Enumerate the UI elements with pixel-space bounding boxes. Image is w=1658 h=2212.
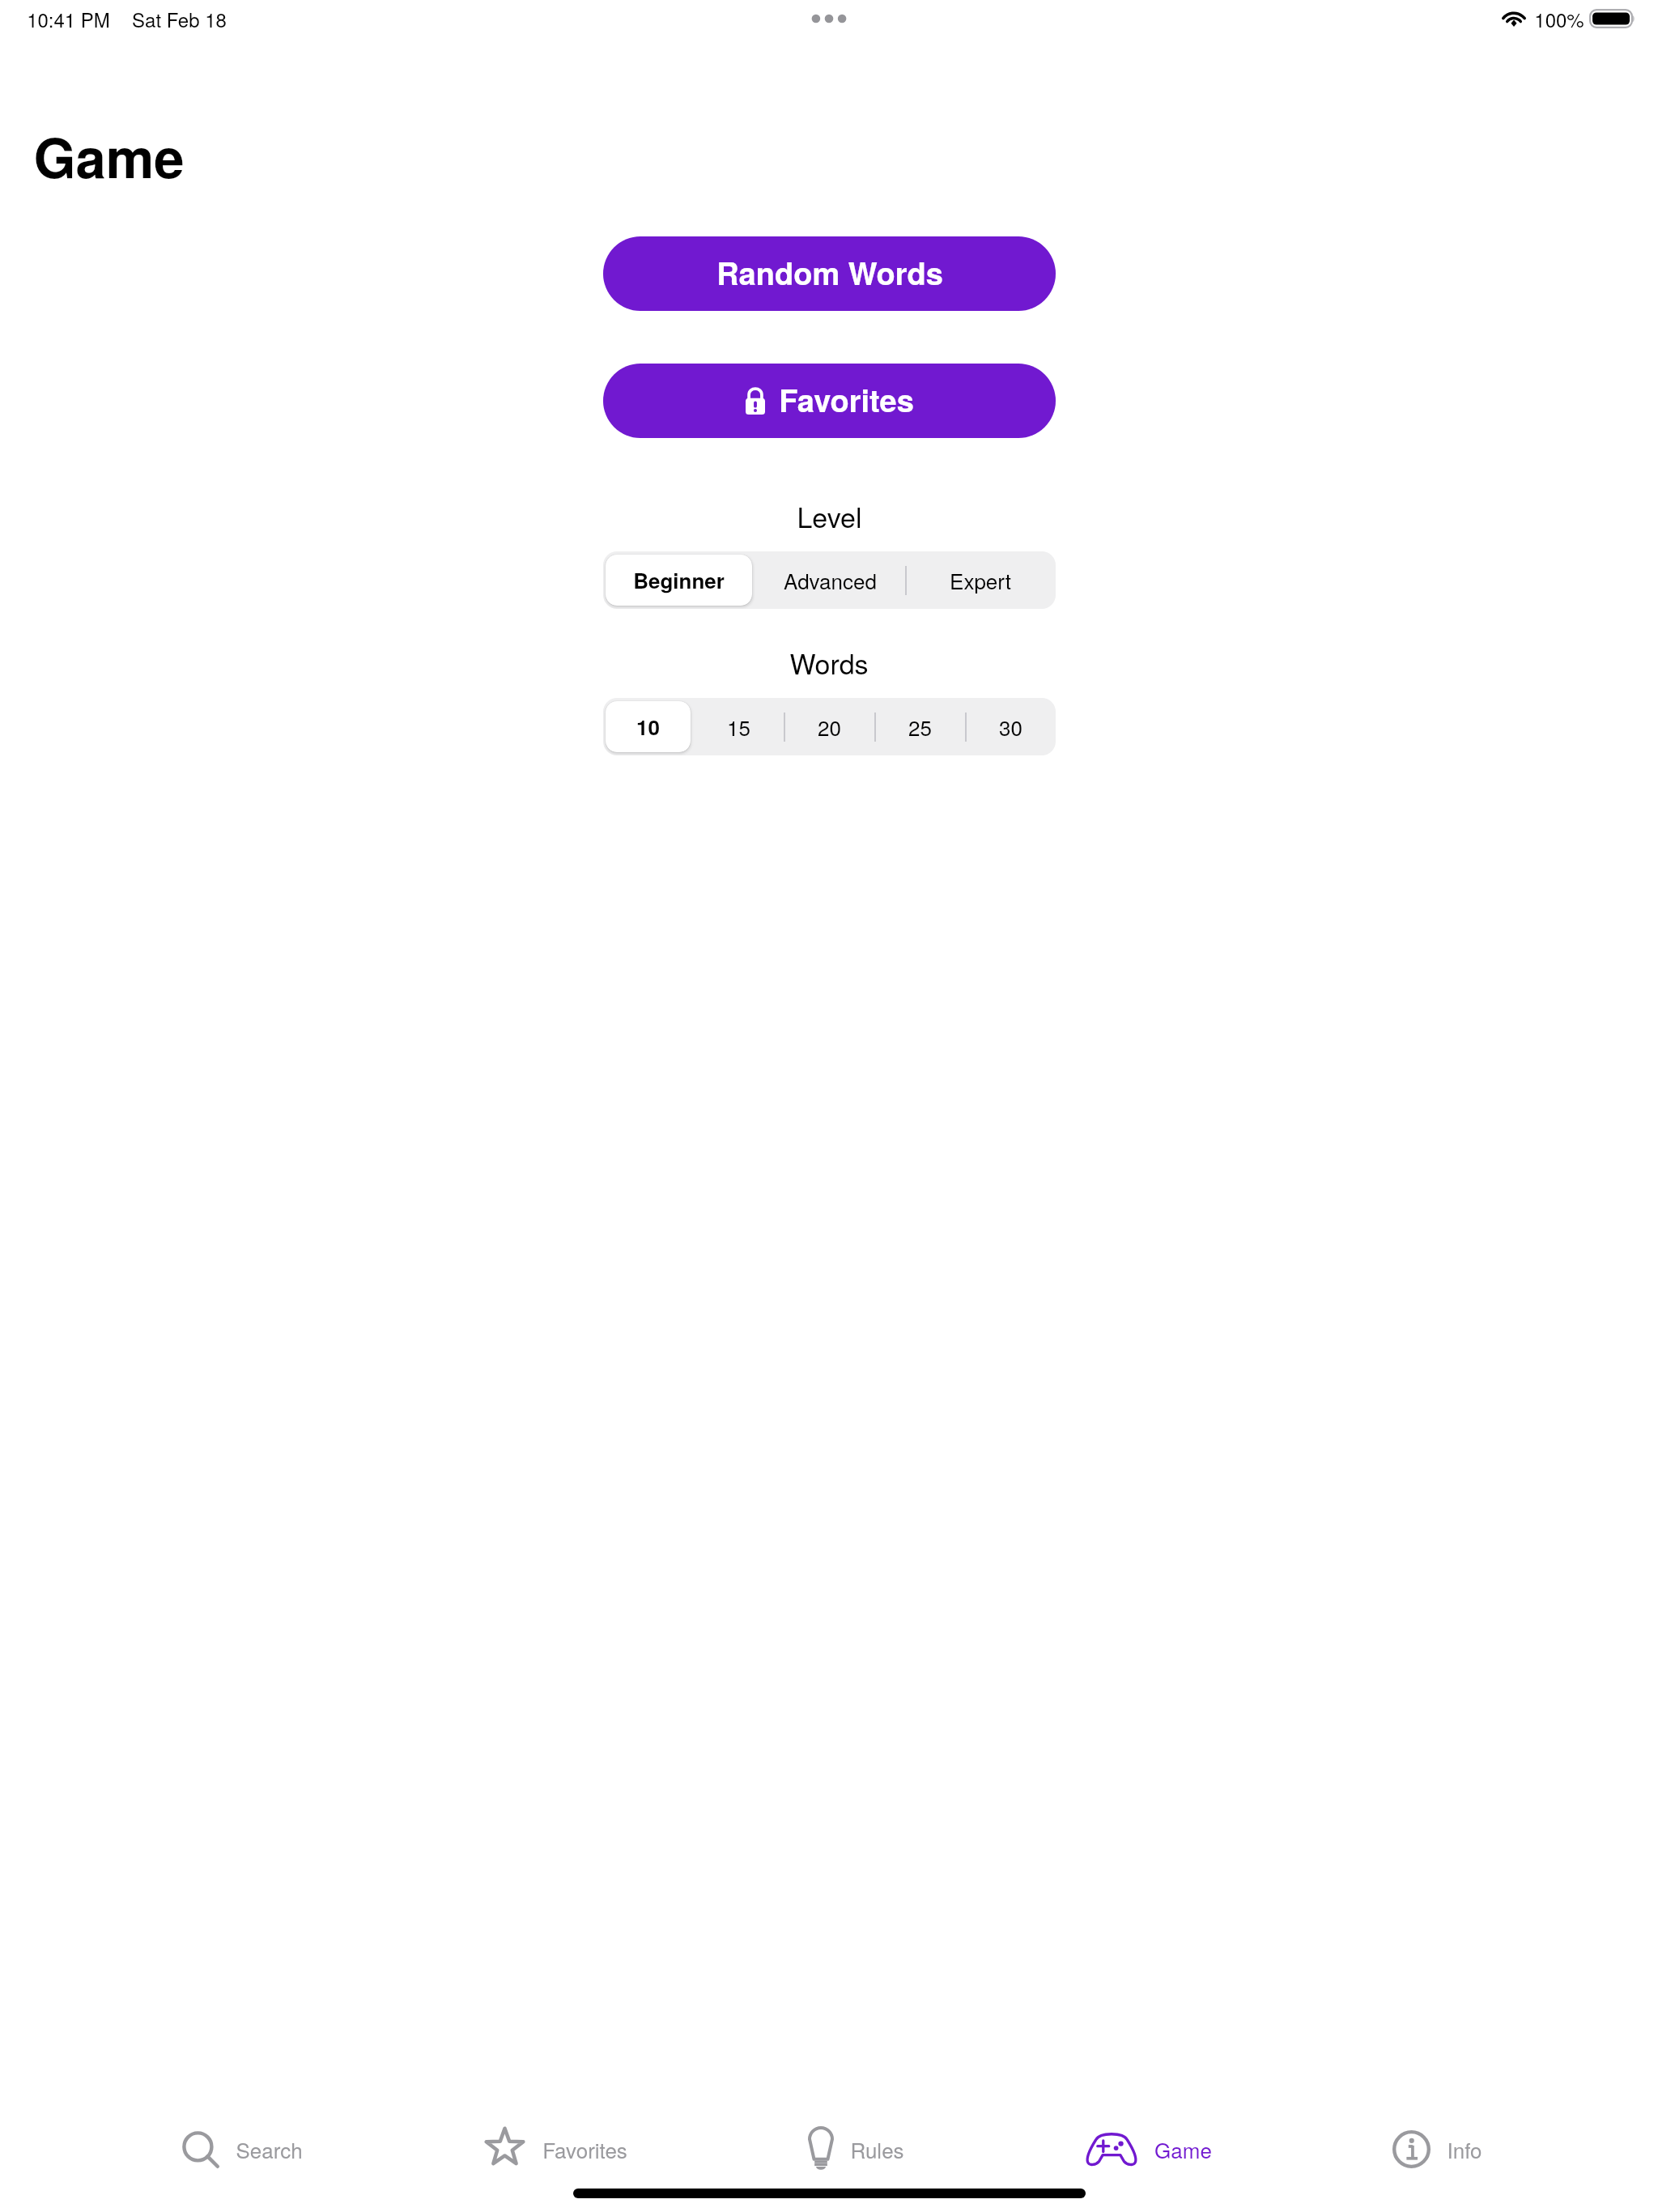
staticText: Beginner (633, 565, 725, 595)
button[interactable]: Rules (808, 2117, 904, 2180)
button[interactable]: Favorites (603, 364, 1056, 438)
other: Camera (811, 14, 847, 23)
button[interactable]: 30 (965, 698, 1056, 755)
other: Wi-Fi (1503, 11, 1525, 27)
button[interactable]: Favorites (483, 2117, 627, 2180)
staticText: 10:41 PM (27, 5, 110, 32)
other: Battery (1589, 9, 1635, 28)
button[interactable]: 15 (693, 698, 784, 755)
staticText: Advanced (784, 565, 877, 595)
button[interactable]: Beginner (603, 551, 755, 609)
button[interactable]: 25 (874, 698, 965, 755)
staticText: Random Words (716, 250, 943, 294)
staticText: Expert (950, 565, 1011, 595)
staticText: 30 (999, 712, 1022, 742)
button[interactable]: Random Words (603, 236, 1056, 311)
staticText: Level (797, 496, 862, 531)
staticText: Rules (850, 2134, 904, 2164)
button[interactable]: 20 (784, 698, 874, 755)
staticText: Game (33, 117, 185, 195)
staticText: 25 (908, 712, 932, 742)
button[interactable]: Game (1085, 2117, 1212, 2180)
button[interactable]: 10 (603, 698, 693, 755)
button[interactable]: Advanced (755, 551, 905, 609)
button[interactable]: Search (181, 2117, 303, 2180)
staticText: Favorites (779, 377, 914, 421)
staticText: Favorites (542, 2134, 627, 2164)
staticText: 20 (818, 712, 841, 742)
button[interactable]: Info (1392, 2117, 1482, 2180)
button[interactable]: Expert (905, 551, 1056, 609)
staticText: Search (236, 2134, 303, 2164)
staticText: 10 (636, 712, 660, 742)
staticText: Sat Feb 18 (132, 5, 227, 32)
staticText: 100% (1534, 5, 1584, 32)
staticText: Words (789, 643, 869, 678)
staticText: 15 (727, 712, 750, 742)
staticText: Game (1154, 2134, 1212, 2164)
staticText: Info (1447, 2134, 1482, 2164)
